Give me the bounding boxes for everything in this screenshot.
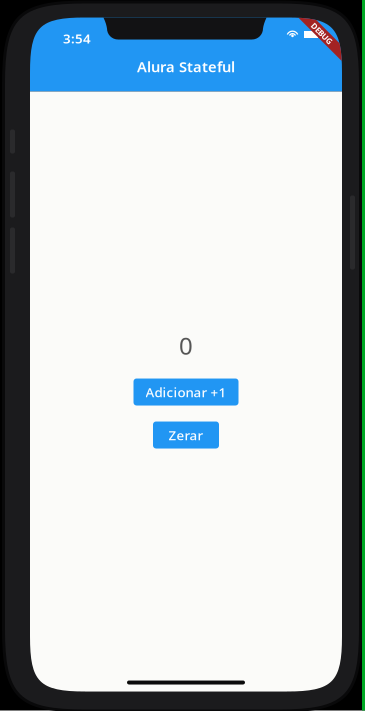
button[interactable]: Zerar [153,421,219,448]
staticText: 0 [179,330,193,361]
staticText: DEBUG [308,28,335,39]
button[interactable]: Adicionar +1 [133,378,238,405]
staticText: Alura Stateful [137,57,235,76]
staticText: Adicionar +1 [145,383,226,401]
staticText: 3:54 [63,29,91,47]
staticText: Zerar [168,426,203,444]
